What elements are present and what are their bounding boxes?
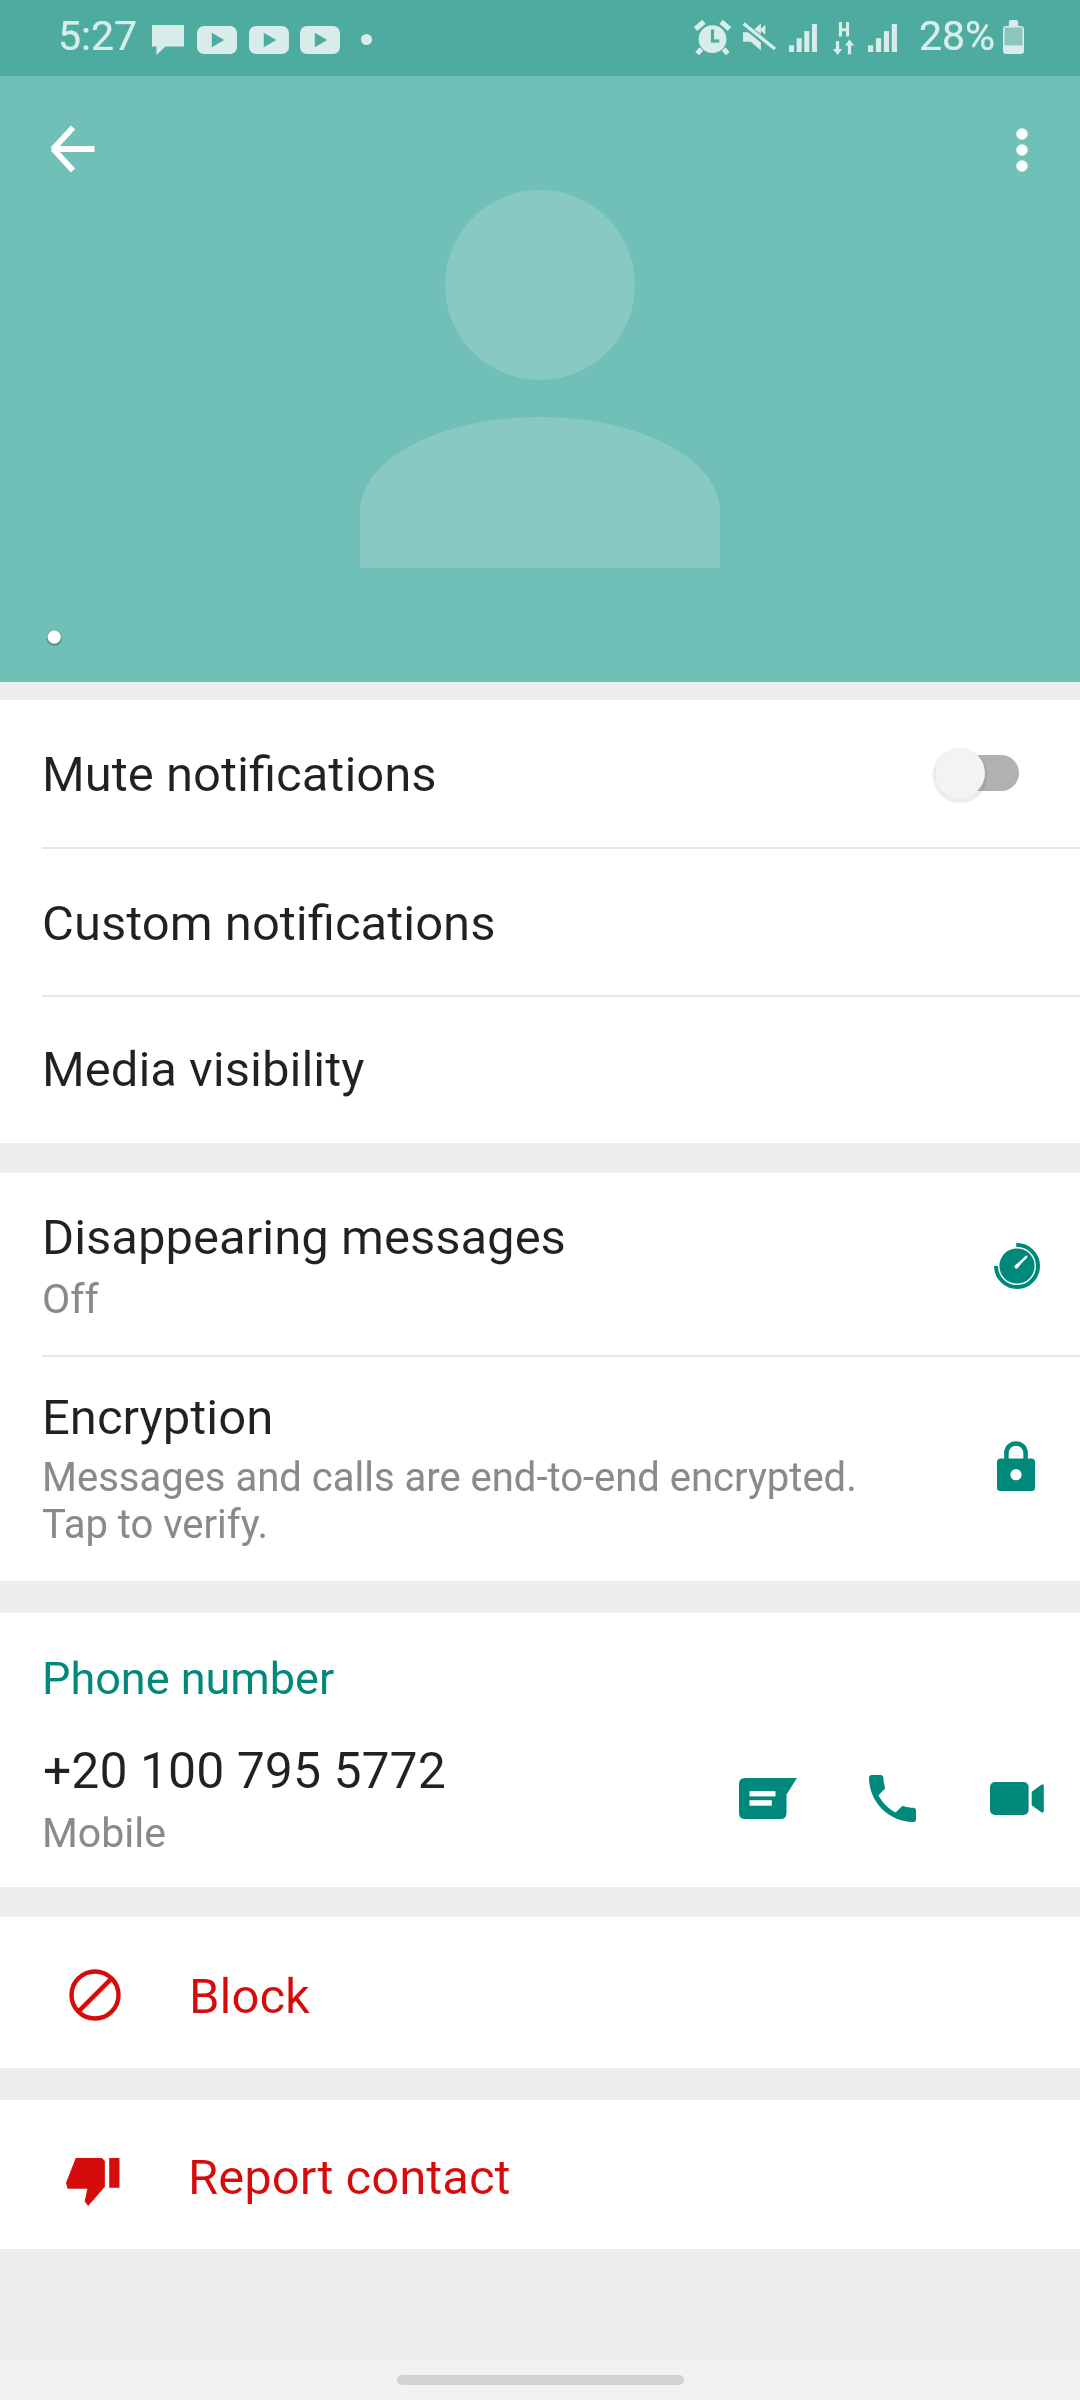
staticText: Mute notifications (42, 746, 437, 803)
staticText: Disappearing messages (42, 1209, 566, 1266)
staticText: Mobile (42, 1809, 166, 1857)
button[interactable] (0, 995, 1080, 1143)
button[interactable]: Mute notifications toggle (915, 743, 1039, 803)
staticText: Media visibility (42, 1041, 365, 1098)
staticText: Block (189, 1968, 310, 2025)
button[interactable] (0, 1173, 1080, 1355)
staticText: Encryption (42, 1389, 274, 1446)
button[interactable] (0, 847, 1080, 995)
button[interactable]: Block (0, 1917, 1080, 2068)
button[interactable]: Report contact (0, 2100, 1080, 2249)
button[interactable] (0, 1355, 1080, 1581)
button[interactable]: Call (846, 1758, 938, 1838)
button[interactable]: Back (25, 101, 121, 197)
staticText: Messages and calls are end-to-end encryp… (42, 1454, 857, 1548)
button[interactable] (0, 700, 1080, 847)
button[interactable] (0, 1613, 1080, 1887)
staticText: Off (42, 1275, 99, 1323)
button[interactable]: Message (718, 1758, 818, 1838)
staticText: Phone number (42, 1652, 335, 1705)
staticText: +20 100 795 5772 (43, 1742, 446, 1801)
button[interactable]: More options (974, 102, 1070, 198)
button[interactable]: Video call (971, 1758, 1063, 1838)
staticText: Custom notifications (42, 895, 496, 952)
staticText: Report contact (188, 2149, 511, 2206)
staticText: 28% (919, 12, 996, 60)
staticText: 5:27 (58, 12, 138, 60)
